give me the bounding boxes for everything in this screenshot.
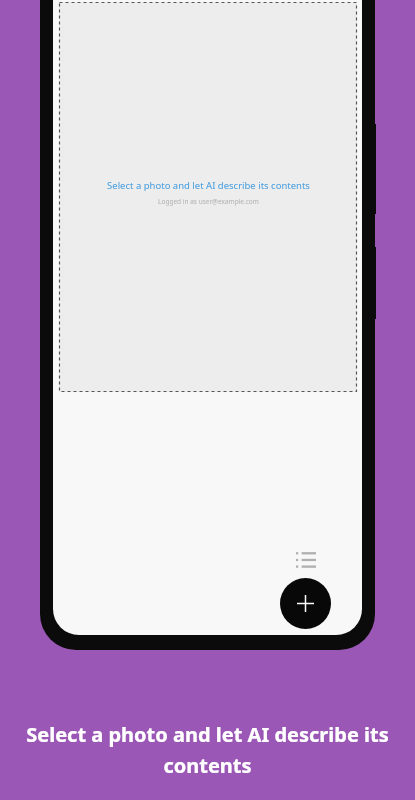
button[interactable]: View list [289, 543, 323, 577]
staticText: Logged in as user@example.com [158, 197, 259, 206]
staticText: Select a photo and let AI describe its c… [107, 179, 310, 192]
button[interactable]: Select a photo and let AI describe its c… [59, 2, 357, 392]
button[interactable]: Add photo [280, 578, 331, 629]
staticText: Select a photo and let AI describe its c… [16, 721, 399, 778]
